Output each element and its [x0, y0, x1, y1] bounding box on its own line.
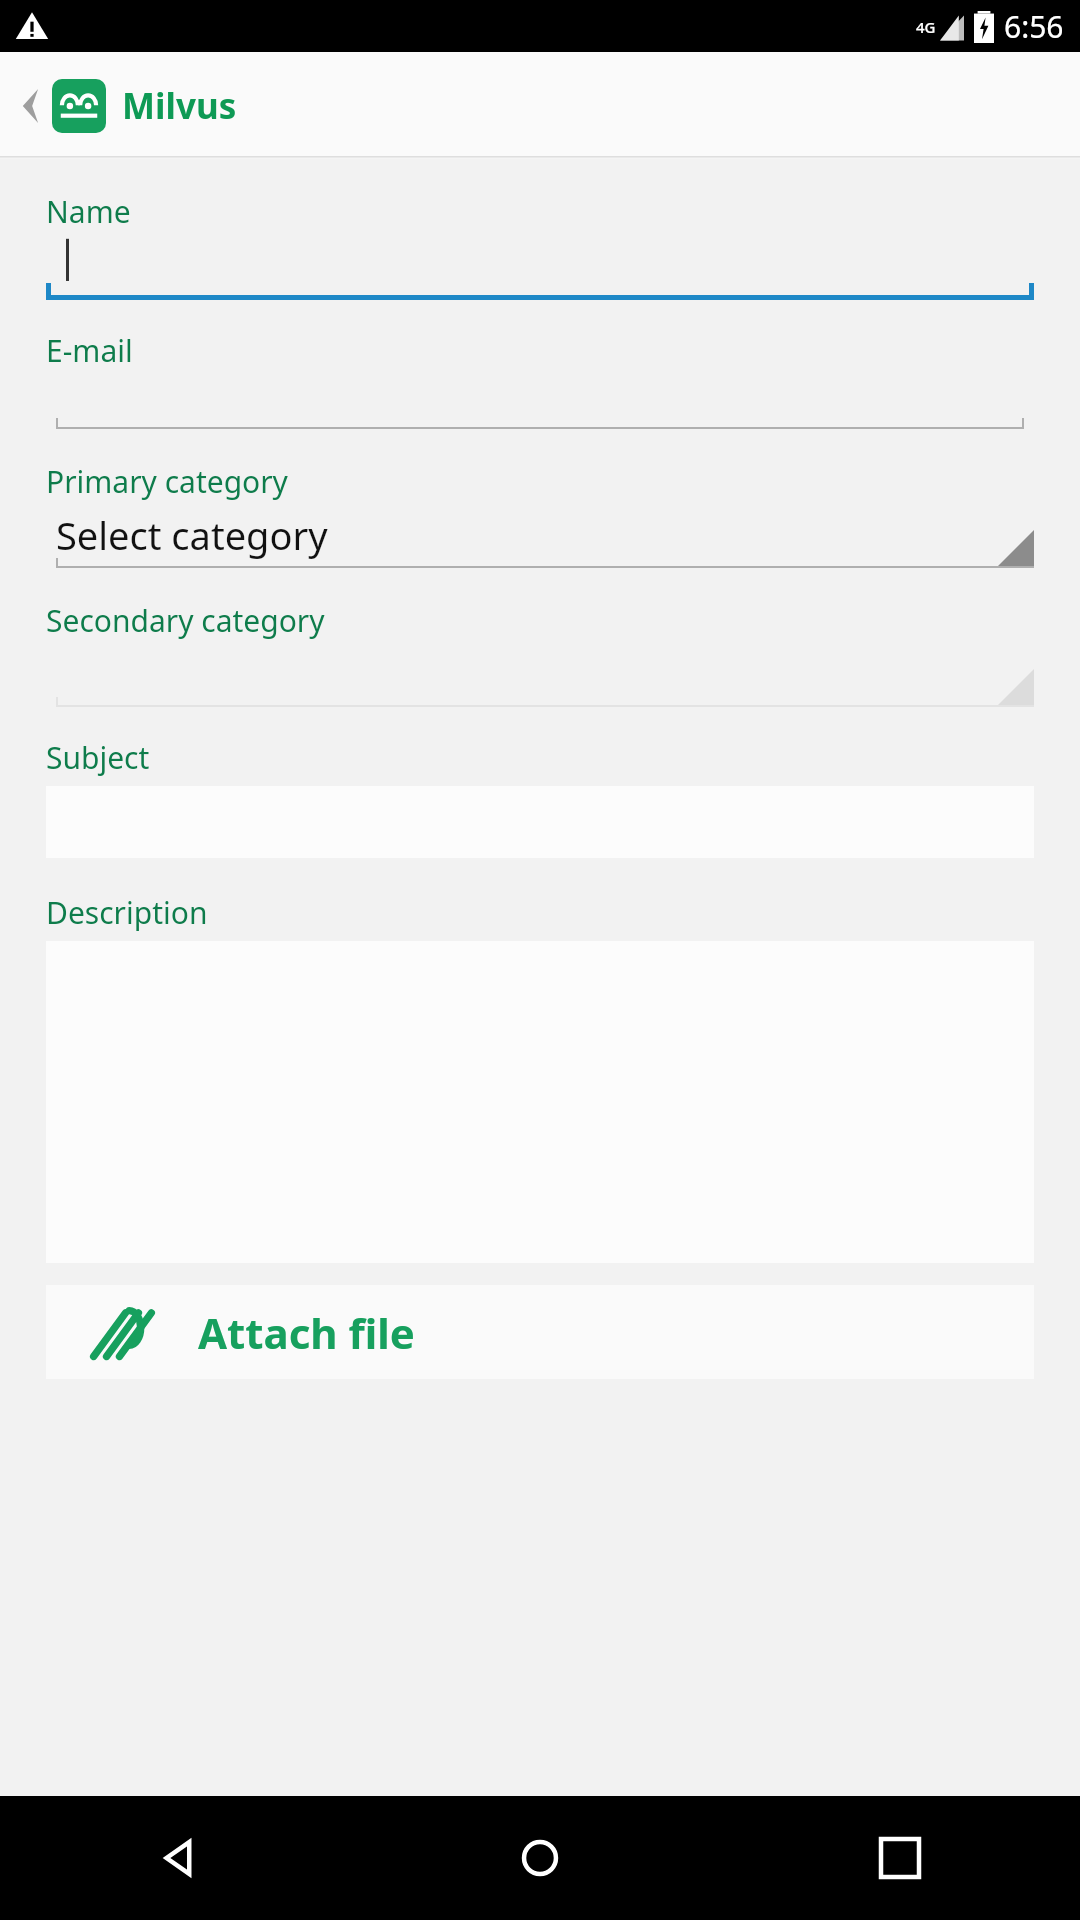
staticText: Attach file — [198, 1304, 415, 1361]
staticText: Select category — [56, 509, 328, 561]
button[interactable] — [46, 232, 1034, 300]
staticText: Description — [46, 892, 208, 933]
button[interactable] — [56, 371, 1024, 429]
button[interactable]: Back — [0, 1796, 360, 1920]
staticText: Name — [46, 191, 131, 232]
staticText: 6:56 — [1004, 6, 1064, 47]
staticText: 4G — [916, 17, 936, 37]
button[interactable]: Back — [8, 84, 52, 128]
button[interactable]: Attach file — [46, 1285, 1034, 1379]
staticText: Subject — [46, 737, 150, 778]
button[interactable]: Select category — [56, 508, 1034, 568]
staticText: Primary category — [46, 461, 288, 502]
staticText: E-mail — [46, 330, 133, 371]
button[interactable]: Recent apps — [720, 1796, 1080, 1920]
button[interactable]: Home — [360, 1796, 720, 1920]
staticText: Secondary category — [46, 600, 325, 641]
button[interactable]: Secondary category — [56, 647, 1034, 707]
staticText: Milvus — [122, 82, 237, 130]
